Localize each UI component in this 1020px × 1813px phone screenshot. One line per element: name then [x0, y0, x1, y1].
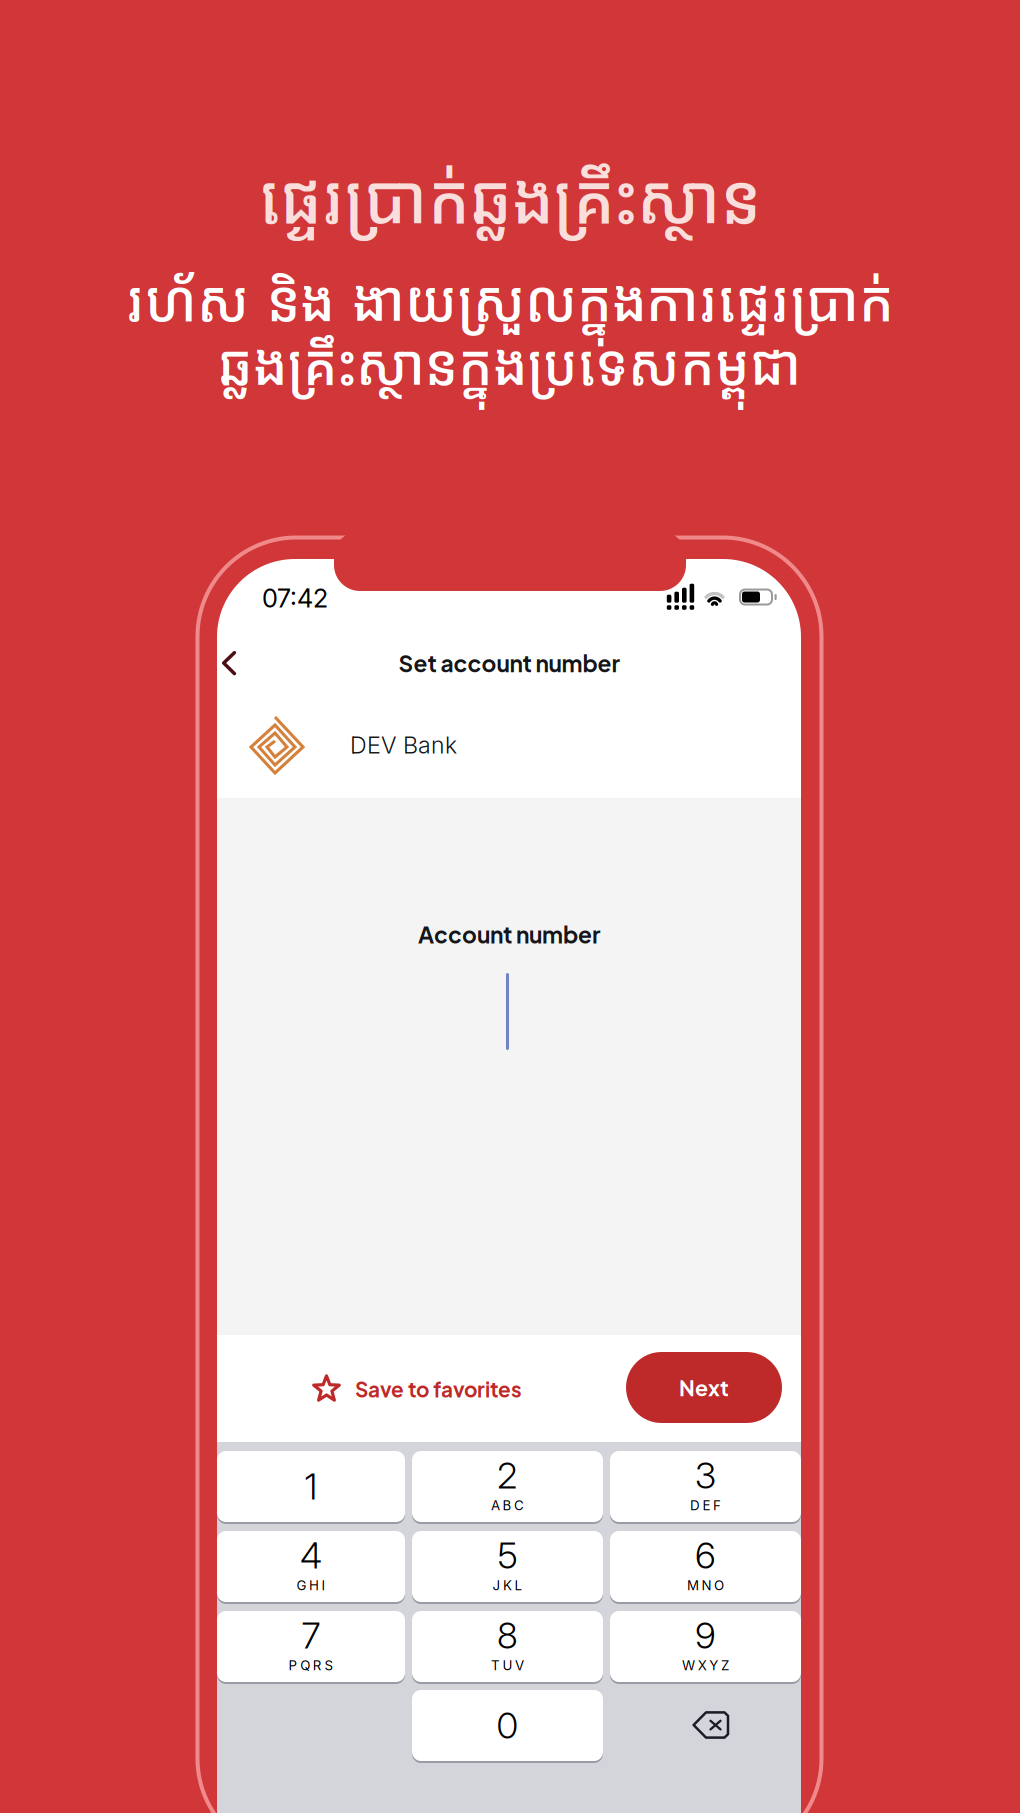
staticText: 1: [304, 1465, 317, 1508]
staticText: 3: [695, 1454, 716, 1497]
button[interactable]: 4: [217, 1531, 405, 1602]
staticText: ផ្ទេរប្រាក់ឆ្លងគ្រឹះស្ថាន: [259, 162, 761, 241]
staticText: Set account number: [398, 649, 619, 677]
button[interactable]: 0: [412, 1690, 603, 1761]
staticText: Save to favorites: [355, 1376, 522, 1402]
staticText: រហ័ស និង ងាយស្រួលក្នុងការផ្ទេរប្រាក់: [126, 270, 894, 335]
button[interactable]: Save to favorites: [312, 1362, 526, 1416]
staticText: ABC: [491, 1497, 524, 1513]
button[interactable]: 6: [610, 1531, 801, 1602]
staticText: 07:42: [262, 583, 328, 614]
staticText: JKL: [492, 1577, 523, 1593]
staticText: 7: [301, 1614, 320, 1657]
staticText: 8: [497, 1614, 518, 1657]
staticText: DEF: [690, 1497, 721, 1513]
staticText: 0: [496, 1704, 518, 1747]
staticText: MNO: [687, 1577, 724, 1593]
staticText: Account number: [418, 920, 600, 949]
button[interactable]: Delete: [692, 1711, 730, 1739]
staticText: 6: [695, 1534, 716, 1577]
button[interactable]: Next: [626, 1352, 782, 1423]
staticText: DEV Bank: [350, 731, 457, 759]
button[interactable]: 9: [610, 1611, 801, 1682]
button[interactable]: 2: [412, 1451, 603, 1522]
staticText: WXYZ: [682, 1657, 729, 1673]
staticText: GHI: [296, 1577, 326, 1593]
button[interactable]: 1: [217, 1451, 405, 1522]
button[interactable]: 5: [412, 1531, 603, 1602]
staticText: Next: [679, 1374, 729, 1401]
button[interactable]: Back: [211, 641, 251, 685]
staticText: ឆ្លងគ្រឹះស្ថានក្នុងប្រទេសកម្ពុជា: [218, 334, 802, 399]
button[interactable]: 8: [412, 1611, 603, 1682]
staticText: PQRS: [289, 1657, 333, 1673]
staticText: 4: [300, 1534, 322, 1577]
button[interactable]: 3: [610, 1451, 801, 1522]
staticText: 5: [497, 1534, 517, 1577]
button[interactable]: 7: [217, 1611, 405, 1682]
staticText: 2: [497, 1454, 518, 1497]
staticText: TUV: [491, 1657, 524, 1673]
staticText: 9: [695, 1614, 716, 1657]
